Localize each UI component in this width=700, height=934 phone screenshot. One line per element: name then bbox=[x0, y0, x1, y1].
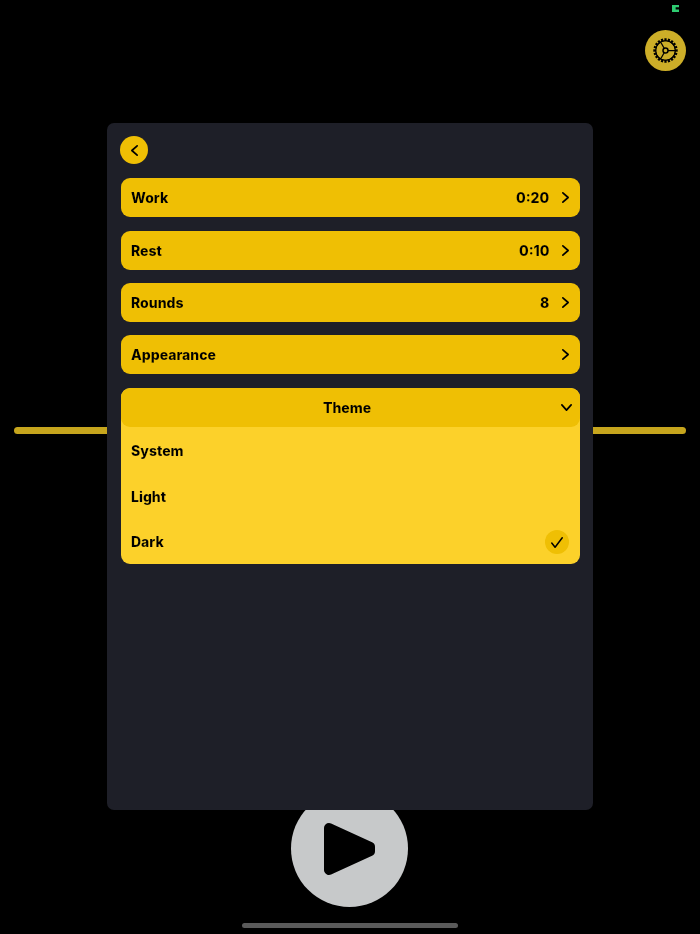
button[interactable]: Appearance bbox=[121, 335, 580, 374]
button[interactable]: Settings bbox=[645, 30, 686, 71]
staticText: 0:10 bbox=[519, 242, 550, 259]
staticText: System bbox=[131, 442, 184, 459]
staticText: Rest bbox=[131, 242, 162, 259]
button[interactable]: Back bbox=[120, 136, 148, 164]
button[interactable]: Rounds bbox=[121, 283, 580, 322]
button[interactable]: Rest bbox=[121, 231, 580, 270]
staticText: 8 bbox=[540, 294, 550, 311]
button[interactable]: Theme bbox=[121, 388, 580, 427]
button[interactable]: Dark bbox=[121, 519, 580, 564]
button[interactable]: Play bbox=[291, 790, 408, 907]
button[interactable]: System bbox=[121, 427, 580, 473]
staticText: Work bbox=[131, 189, 169, 206]
staticText: Theme bbox=[323, 399, 372, 416]
staticText: Light bbox=[131, 488, 167, 505]
staticText: Appearance bbox=[131, 346, 216, 363]
staticText: Dark bbox=[131, 533, 164, 550]
staticText: 0:20 bbox=[516, 189, 550, 206]
button[interactable]: Work bbox=[121, 178, 580, 217]
staticText: Rounds bbox=[131, 294, 184, 311]
button[interactable]: Light bbox=[121, 473, 580, 519]
